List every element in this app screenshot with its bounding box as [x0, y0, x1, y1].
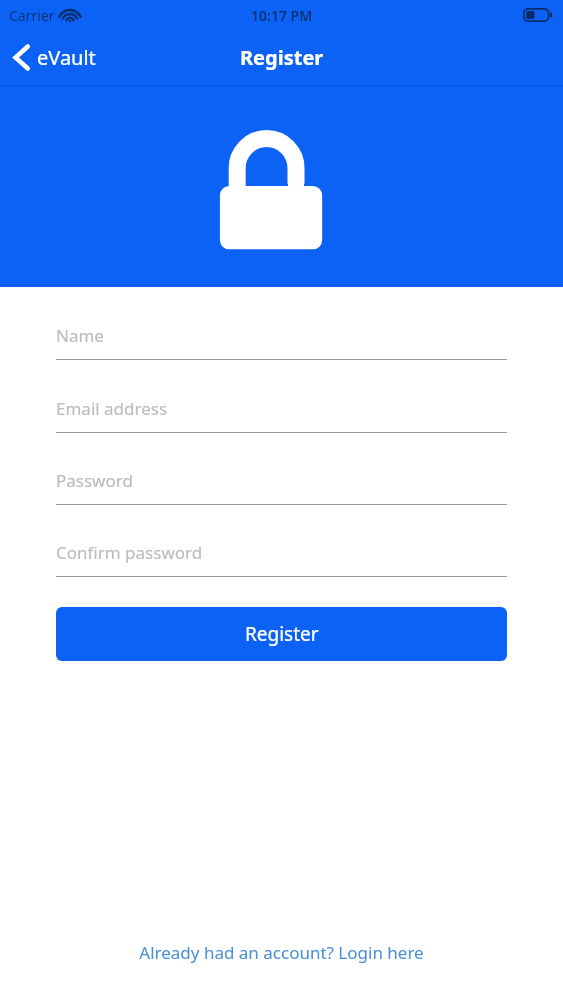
staticText: Register — [240, 44, 324, 71]
staticText: Password — [56, 469, 133, 492]
staticText: eVault — [37, 44, 96, 71]
staticText: Email address — [56, 397, 168, 420]
button[interactable]: Confirm password — [56, 541, 507, 577]
button[interactable]: Back — [0, 38, 108, 77]
button[interactable]: Already had an account? Login here — [123, 935, 440, 970]
staticText: Confirm password — [56, 541, 203, 564]
staticText: Carrier — [9, 6, 55, 25]
staticText: Register — [245, 621, 319, 647]
other: Back — [14, 45, 29, 70]
staticText: Already had an account? Login here — [139, 941, 424, 964]
other: Unlocked padlock — [212, 110, 332, 255]
button[interactable]: Email address — [56, 397, 507, 433]
button[interactable]: Register — [56, 607, 507, 661]
staticText: 10:17 PM — [251, 6, 313, 25]
button[interactable]: Password — [56, 469, 507, 505]
button[interactable]: Name — [56, 324, 507, 360]
staticText: Name — [56, 324, 104, 347]
